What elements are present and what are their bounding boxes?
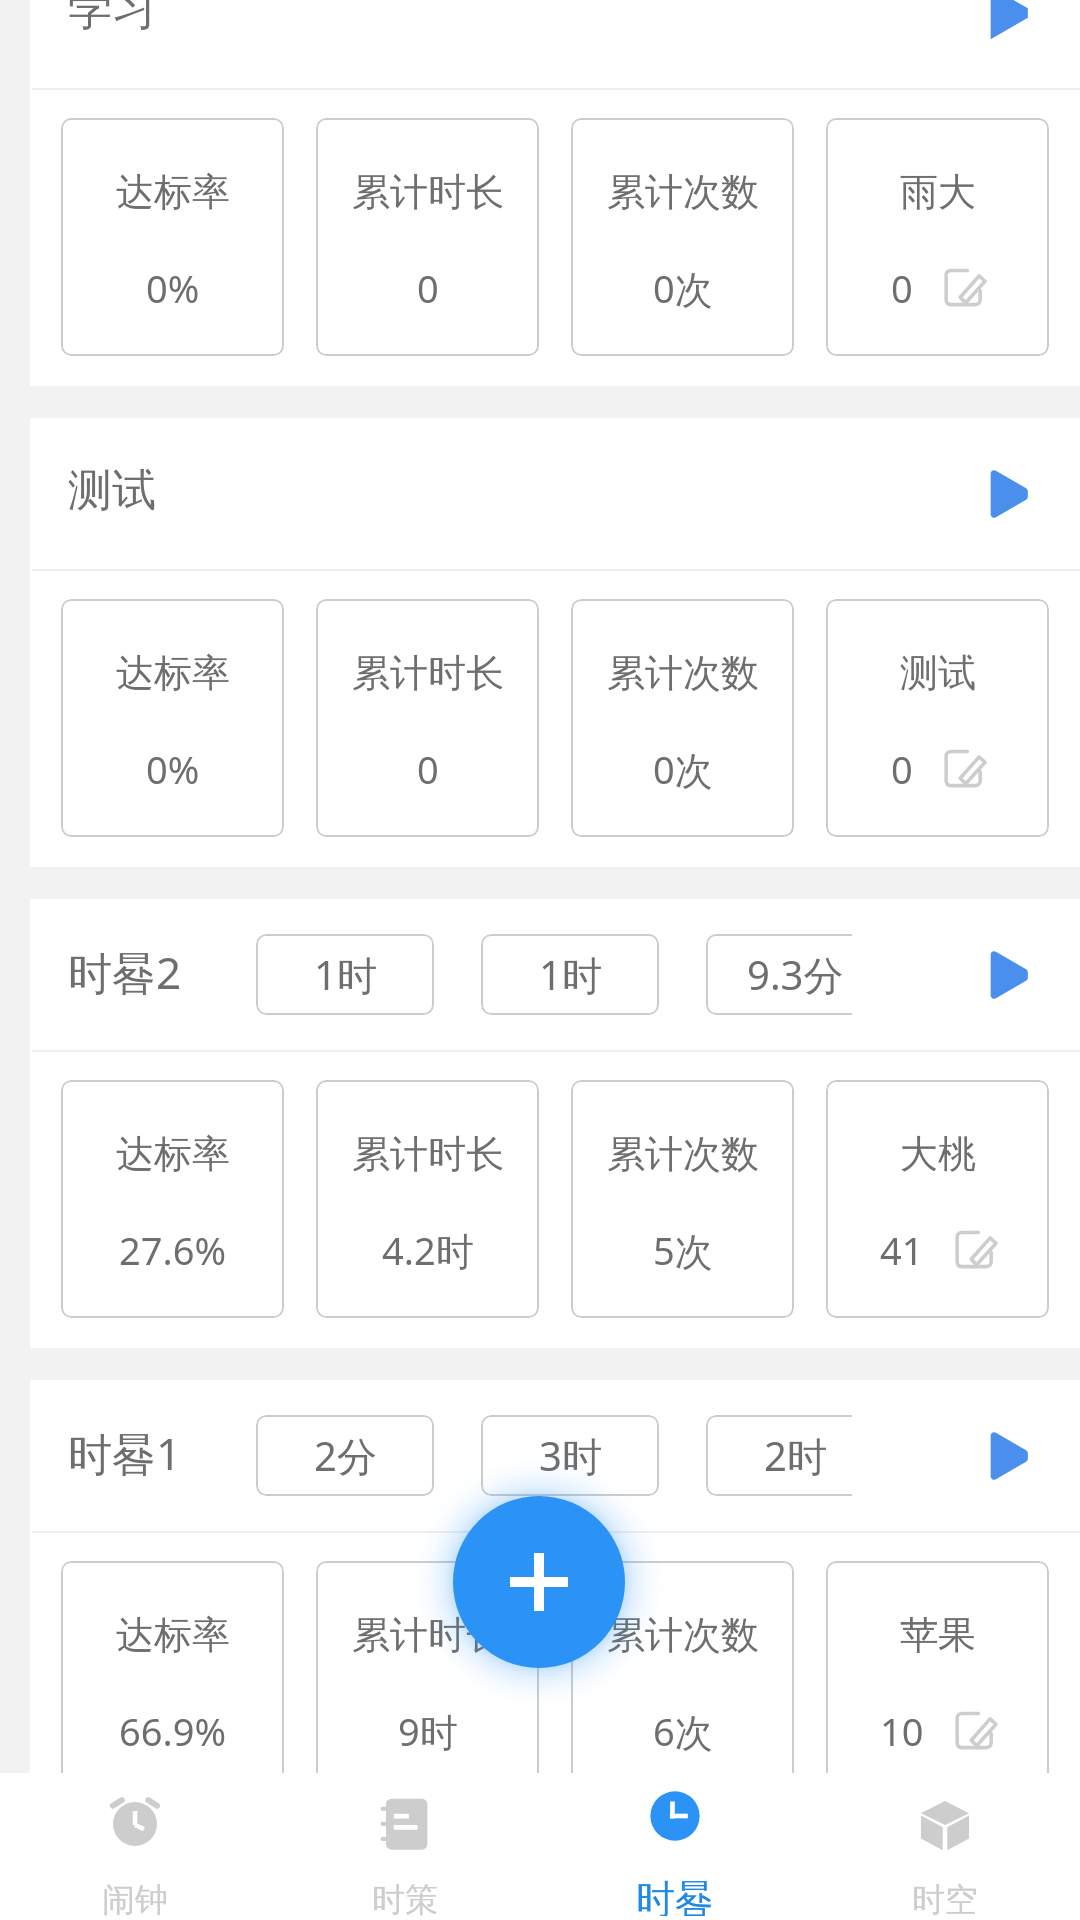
staticText: 达标率 — [116, 1611, 230, 1659]
staticText: 测试 — [900, 649, 976, 697]
staticText: 时策 — [372, 1879, 438, 1920]
button[interactable]: 时晷1 — [30, 1380, 1080, 1531]
staticText: 0% — [146, 743, 200, 795]
staticText: 0 — [891, 743, 913, 795]
staticText: 累计时长 — [352, 649, 504, 697]
button[interactable]: Add — [453, 1496, 625, 1668]
staticText: 2时 — [764, 1428, 827, 1483]
button[interactable]: 达标率 — [61, 599, 284, 837]
staticText: 累计次数 — [607, 649, 759, 697]
button[interactable]: 雨大 — [826, 118, 1049, 356]
staticText: 时晷 — [636, 1875, 714, 1916]
button[interactable]: 1时 — [481, 934, 659, 1015]
staticText: 66.9% — [119, 1705, 226, 1757]
button[interactable]: 测试 — [30, 418, 1080, 569]
staticText: 时晷1 — [68, 1423, 182, 1483]
button[interactable]: 达标率 — [61, 1561, 284, 1799]
staticText: 累计次数 — [607, 1611, 759, 1659]
button[interactable]: 苹果 — [826, 1561, 1049, 1799]
staticText: 2分 — [314, 1428, 377, 1483]
button[interactable]: Start — [963, 0, 1059, 61]
staticText: 累计次数 — [607, 1130, 759, 1178]
staticText: 时晷2 — [68, 942, 182, 1002]
staticText: 0 — [417, 262, 439, 314]
staticText: 测试 — [68, 463, 156, 518]
button[interactable]: 累计次数 — [571, 599, 794, 837]
staticText: 0次 — [653, 743, 713, 795]
staticText: 27.6% — [119, 1224, 226, 1276]
button[interactable]: 测试 — [826, 599, 1049, 837]
button[interactable]: 闹钟 — [0, 1773, 270, 1920]
button[interactable]: Start — [963, 1408, 1059, 1504]
staticText: 4.2时 — [382, 1224, 474, 1276]
button[interactable]: 时策 — [270, 1773, 540, 1920]
staticText: 大桃 — [900, 1130, 976, 1178]
button[interactable]: Start — [963, 927, 1059, 1023]
staticText: 41 — [880, 1224, 924, 1276]
staticText: 9.3分 — [747, 947, 844, 1002]
staticText: 0 — [417, 743, 439, 795]
staticText: 10 — [880, 1705, 924, 1757]
button[interactable]: 学习 — [30, 0, 1080, 88]
button[interactable]: 2分 — [256, 1415, 434, 1496]
button[interactable]: 累计时长 — [316, 1080, 539, 1318]
button[interactable]: 3时 — [481, 1415, 659, 1496]
staticText: 6次 — [653, 1705, 713, 1757]
staticText: 累计次数 — [607, 168, 759, 216]
staticText: 累计时长 — [352, 168, 504, 216]
staticText: 1时 — [314, 947, 377, 1002]
staticText: 雨大 — [900, 168, 976, 216]
staticText: 0% — [146, 262, 200, 314]
button[interactable]: 累计时长 — [316, 599, 539, 837]
button[interactable]: 大桃 — [826, 1080, 1049, 1318]
staticText: 0 — [891, 262, 913, 314]
button[interactable]: 累计时长 — [316, 1561, 539, 1799]
staticText: 9时 — [398, 1705, 458, 1757]
button[interactable]: 累计次数 — [571, 1080, 794, 1318]
staticText: 闹钟 — [102, 1879, 168, 1920]
staticText: 0次 — [653, 262, 713, 314]
button[interactable]: 累计次数 — [571, 118, 794, 356]
staticText: 累计时长 — [352, 1130, 504, 1178]
button[interactable]: 时晷2 — [30, 899, 1080, 1050]
staticText: 达标率 — [116, 649, 230, 697]
staticText: 累计时长 — [352, 1611, 504, 1659]
button[interactable]: 时晷 — [540, 1773, 810, 1920]
staticText: 学习 — [68, 0, 156, 37]
staticText: 3时 — [539, 1428, 602, 1483]
button[interactable]: 累计时长 — [316, 118, 539, 356]
staticText: 达标率 — [116, 1130, 230, 1178]
button[interactable]: 时空 — [810, 1773, 1080, 1920]
staticText: 5次 — [653, 1224, 713, 1276]
staticText: 苹果 — [900, 1611, 976, 1659]
button[interactable]: 9.3分 — [706, 934, 852, 1015]
staticText: 1时 — [539, 947, 602, 1002]
button[interactable]: 达标率 — [61, 1080, 284, 1318]
button[interactable]: Start — [963, 446, 1059, 542]
button[interactable]: 1时 — [256, 934, 434, 1015]
staticText: 达标率 — [116, 168, 230, 216]
button[interactable]: 达标率 — [61, 118, 284, 356]
button[interactable]: 累计次数 — [571, 1561, 794, 1799]
staticText: 时空 — [912, 1879, 978, 1920]
button[interactable]: 2时 — [706, 1415, 852, 1496]
